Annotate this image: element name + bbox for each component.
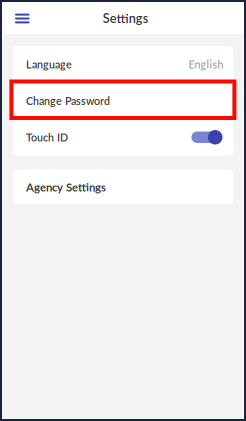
- button[interactable]: Agency Settings: [13, 169, 233, 204]
- button[interactable]: Touch ID: [191, 128, 222, 146]
- staticText: Change Password: [26, 94, 110, 107]
- staticText: Touch ID: [26, 131, 68, 144]
- staticText: Agency Settings: [26, 180, 106, 194]
- button[interactable]: Change Password: [13, 82, 233, 119]
- staticText: Language: [26, 58, 72, 71]
- button[interactable]: Language: [13, 46, 233, 82]
- button[interactable]: Menu: [3, 6, 39, 31]
- staticText: Settings: [103, 10, 149, 26]
- staticText: English: [188, 58, 223, 71]
